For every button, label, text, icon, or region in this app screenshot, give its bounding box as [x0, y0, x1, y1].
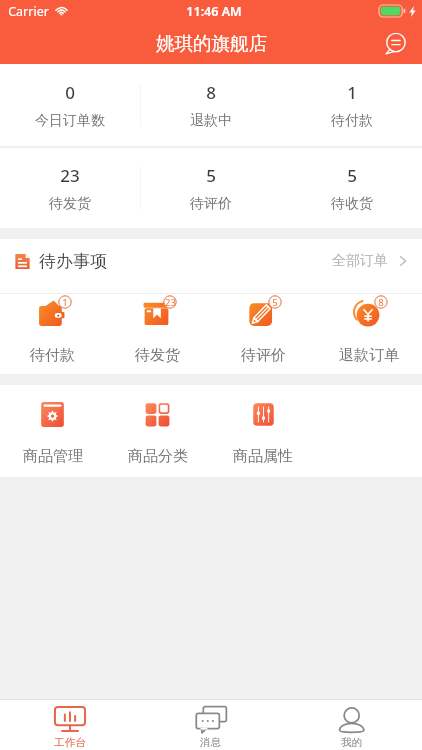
button[interactable]: 8 [140, 64, 281, 146]
staticText: 23 [165, 296, 176, 309]
button[interactable]: 商品分类 [105, 385, 210, 477]
staticText: 待付款 [30, 346, 75, 365]
staticText: 消息 [200, 736, 221, 749]
staticText: 商品分类 [128, 447, 188, 466]
button[interactable]: 23 [105, 294, 210, 374]
staticText: 5 [206, 164, 216, 187]
button[interactable]: 5 [281, 148, 422, 228]
button[interactable]: 待办事项 [0, 239, 422, 283]
staticText: 待付款 [331, 112, 373, 130]
staticText: 0 [65, 81, 75, 104]
staticText: 退款中 [190, 112, 232, 130]
staticText: 全部订单 [332, 252, 388, 270]
staticText: 退款订单 [339, 346, 399, 365]
button[interactable]: 0 [0, 64, 140, 146]
staticText: 待发货 [49, 195, 91, 213]
button[interactable]: 商品属性 [210, 385, 316, 477]
staticText: 5 [272, 296, 278, 309]
staticText: 待发货 [135, 346, 180, 365]
button[interactable]: 1 [281, 64, 422, 146]
button[interactable]: 消息 [140, 700, 281, 750]
staticText: 11:46 AM [186, 3, 242, 20]
staticText: 商品管理 [23, 447, 83, 466]
staticText: 5 [347, 164, 357, 187]
button[interactable]: 23 [0, 148, 140, 228]
staticText: Carrier [8, 3, 49, 20]
staticText: 商品属性 [233, 447, 293, 466]
button[interactable]: 工作台 [0, 700, 140, 750]
staticText: 待评价 [190, 195, 232, 213]
button[interactable]: 1 [0, 294, 105, 374]
staticText: 今日订单数 [35, 112, 105, 130]
staticText: 8 [206, 81, 216, 104]
button[interactable]: 商品管理 [0, 385, 105, 477]
staticText: 待办事项 [39, 251, 107, 272]
staticText: 1 [62, 296, 68, 309]
staticText: 工作台 [54, 736, 86, 749]
button[interactable]: Messages [376, 24, 414, 62]
button[interactable]: 5 [210, 294, 316, 374]
staticText: 姚琪的旗舰店 [156, 32, 267, 55]
staticText: 待评价 [241, 346, 286, 365]
staticText: 23 [60, 164, 80, 187]
button[interactable]: 5 [140, 148, 281, 228]
staticText: 我的 [341, 736, 362, 749]
button[interactable]: 8 [316, 294, 422, 374]
staticText: 8 [378, 296, 384, 309]
staticText: 待收货 [331, 195, 373, 213]
staticText: 1 [347, 81, 357, 104]
button[interactable]: 我的 [281, 700, 422, 750]
